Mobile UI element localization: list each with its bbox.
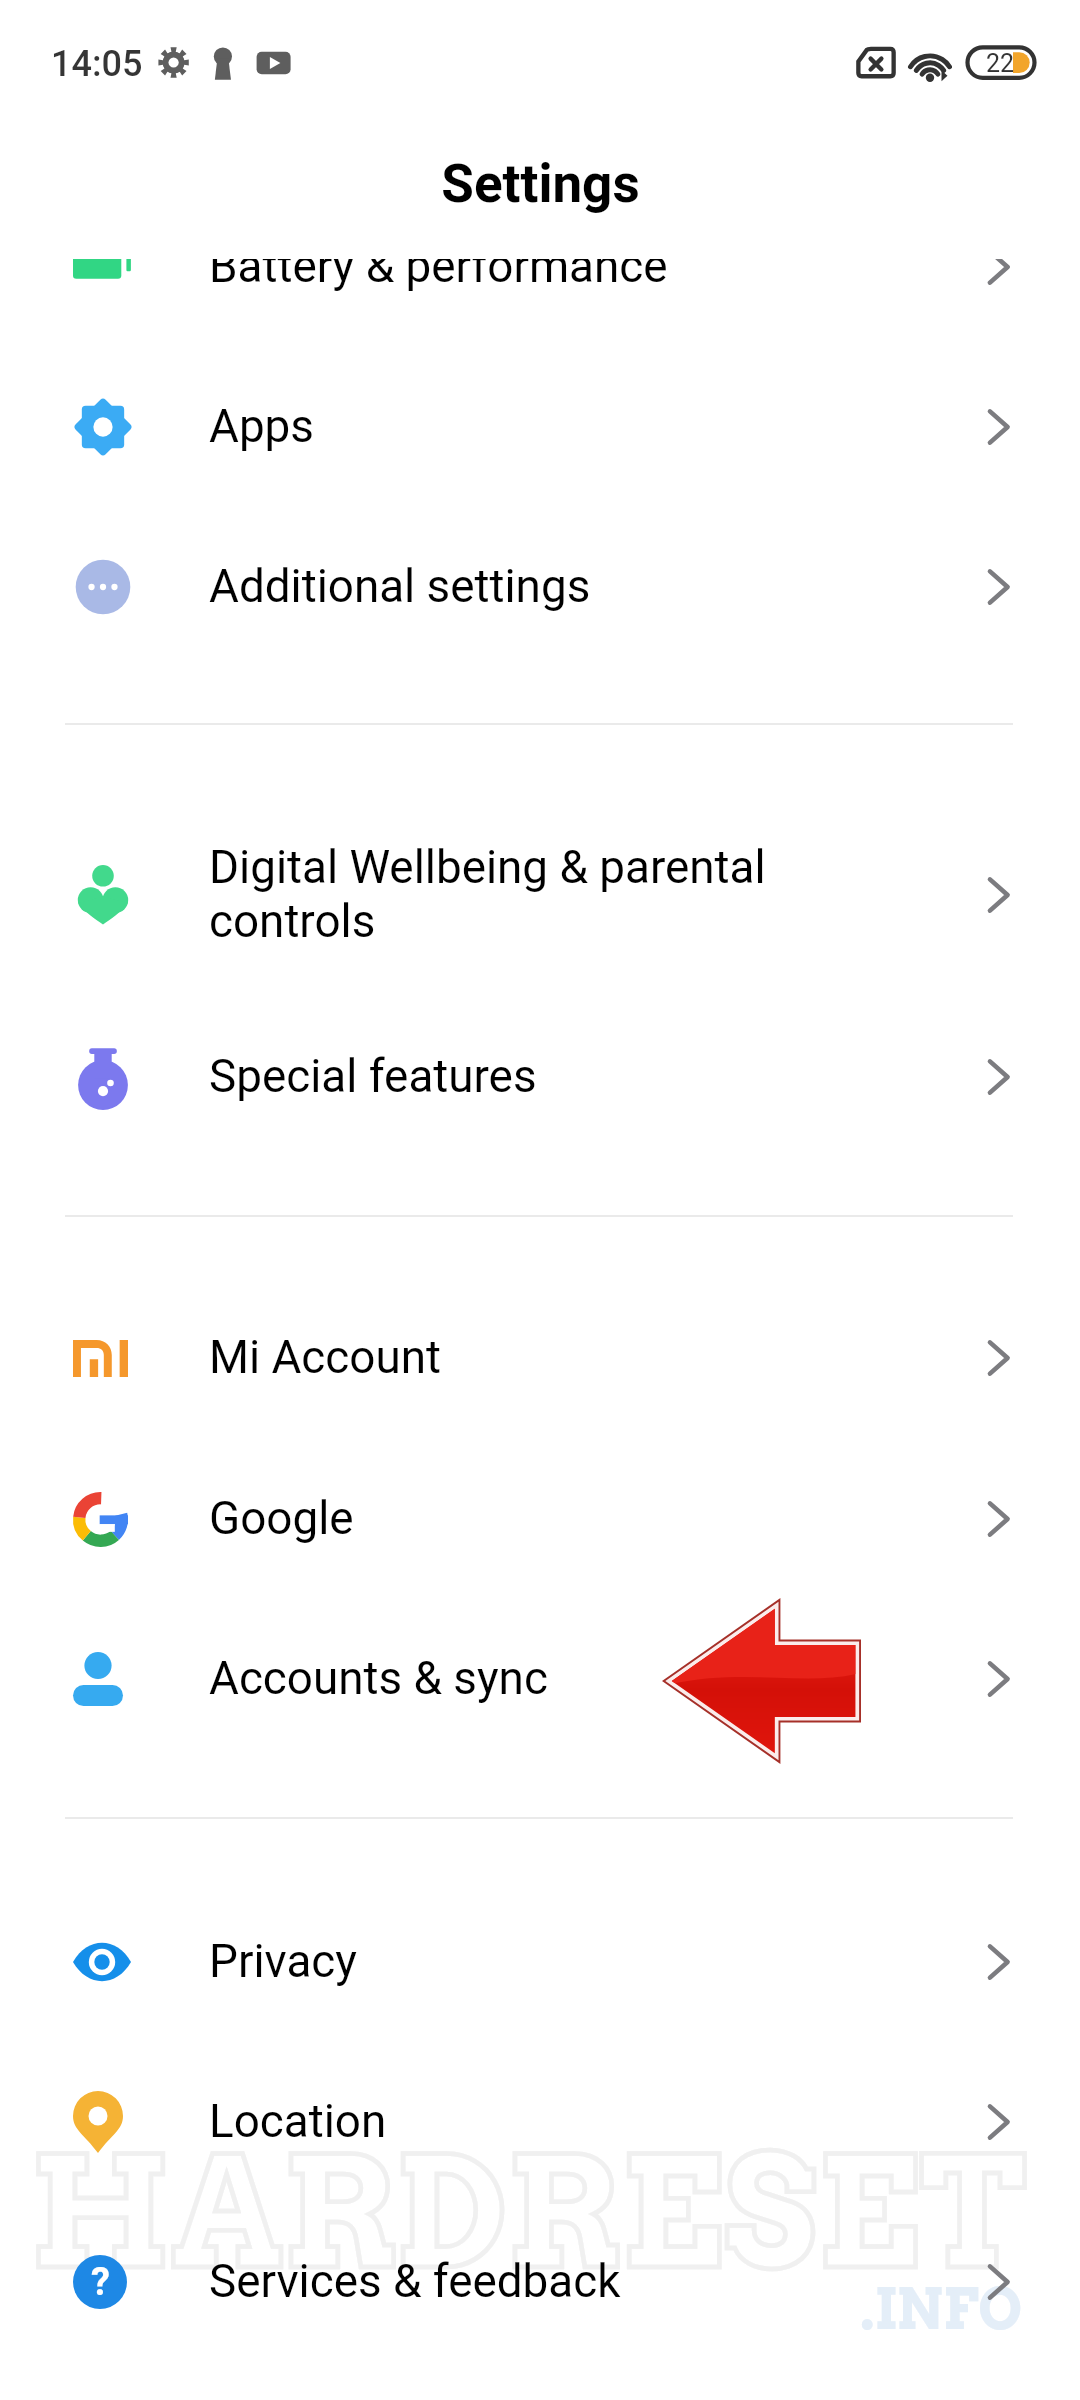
button[interactable]: Accounts & sync <box>0 1599 1080 1759</box>
staticText: Digital Wellbeing & parental controls <box>209 841 766 949</box>
button[interactable]: Services & feedback <box>0 2202 1080 2362</box>
staticText: Services & feedback <box>209 2255 621 2309</box>
button[interactable]: Privacy <box>0 1882 1080 2042</box>
button[interactable]: Location <box>0 2042 1080 2202</box>
staticText: Google <box>209 1492 354 1546</box>
staticText: Mi Account <box>209 1331 441 1385</box>
staticText: HARDRESET <box>30 2120 1027 2305</box>
button[interactable]: Digital Wellbeing & parental controls <box>0 793 1080 997</box>
staticText: Location <box>209 2095 387 2149</box>
staticText: 14:05 <box>51 43 143 85</box>
button[interactable]: Mi Account <box>0 1278 1080 1438</box>
staticText: Additional settings <box>209 560 591 614</box>
button[interactable]: Google <box>0 1439 1080 1599</box>
button[interactable]: Additional settings <box>0 507 1080 667</box>
staticText: 22 <box>986 49 1015 78</box>
staticText: .INFO <box>860 2275 1023 2343</box>
staticText: Privacy <box>209 1935 357 1989</box>
button[interactable]: Apps <box>0 347 1080 507</box>
staticText: Settings <box>441 153 640 215</box>
button[interactable]: Special features <box>0 997 1080 1157</box>
staticText: ? <box>91 2260 110 2305</box>
staticText: Accounts & sync <box>209 1652 548 1706</box>
button[interactable]: Battery & performance <box>0 259 1080 347</box>
staticText: Special features <box>209 1050 537 1104</box>
staticText: Apps <box>209 400 314 454</box>
staticText: Battery & performance <box>209 259 668 294</box>
